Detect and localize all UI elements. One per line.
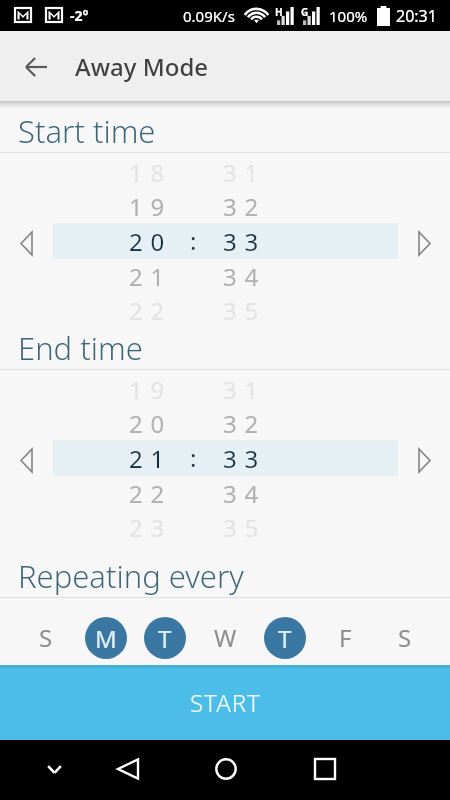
staticText: 3 1 [223, 156, 260, 189]
button[interactable]: Previous [8, 221, 44, 265]
button[interactable]: F [319, 616, 371, 659]
button[interactable]: Next [406, 438, 442, 482]
staticText: S [39, 621, 53, 654]
staticText: 1 8 [129, 156, 166, 189]
staticText: 3 5 [223, 294, 260, 327]
staticText: 3 4 [223, 260, 260, 293]
staticText: 3 5 [223, 511, 260, 544]
staticText: F [339, 621, 352, 654]
staticText: 0.09K/s [183, 6, 235, 26]
staticText: 2 0 [129, 407, 166, 440]
button[interactable]: Hide keyboard [34, 749, 74, 789]
staticText: : [190, 224, 197, 257]
button[interactable]: Previous [8, 438, 44, 482]
staticText: 1 9 [129, 373, 166, 406]
staticText: 3 2 [223, 407, 260, 440]
staticText: 2 3 [129, 511, 166, 544]
staticText: 3 3 [223, 225, 260, 258]
staticText: : [190, 441, 197, 474]
staticText: 3 3 [223, 442, 260, 475]
staticText: 2 0 [129, 225, 166, 258]
button[interactable]: S [379, 616, 431, 659]
staticText: -2° [70, 6, 89, 25]
button[interactable]: Next [406, 221, 442, 265]
button[interactable]: T [259, 616, 311, 659]
staticText: T [278, 622, 292, 655]
button[interactable]: Back [15, 46, 57, 88]
staticText: Away Mode [75, 50, 209, 83]
button[interactable]: Back [105, 746, 151, 792]
staticText: 2 1 [129, 442, 166, 475]
staticText: M [95, 622, 117, 655]
button[interactable]: Recents [302, 746, 348, 792]
button[interactable]: S [20, 616, 72, 659]
staticText: 3 2 [223, 190, 260, 223]
staticText: 3 1 [223, 373, 260, 406]
button[interactable]: M [80, 616, 132, 659]
staticText: 20:31 [396, 5, 437, 27]
staticText: 3 4 [223, 477, 260, 510]
staticText: S [398, 621, 412, 654]
staticText: 1 9 [129, 190, 166, 223]
staticText: Repeating every [18, 555, 244, 597]
staticText: 2 2 [129, 294, 166, 327]
staticText: 2 2 [129, 477, 166, 510]
staticText: W [214, 621, 237, 654]
staticText: 2 1 [129, 260, 166, 293]
button[interactable]: T [139, 616, 191, 659]
staticText: H [275, 5, 283, 19]
button[interactable]: START [0, 665, 450, 740]
button[interactable]: Home [203, 746, 249, 792]
button[interactable]: W [199, 616, 251, 659]
staticText: End time [18, 327, 143, 369]
staticText: G [301, 5, 309, 19]
staticText: 100% [329, 6, 368, 26]
staticText: Start time [18, 110, 156, 152]
staticText: START [190, 686, 261, 719]
staticText: T [158, 622, 172, 655]
